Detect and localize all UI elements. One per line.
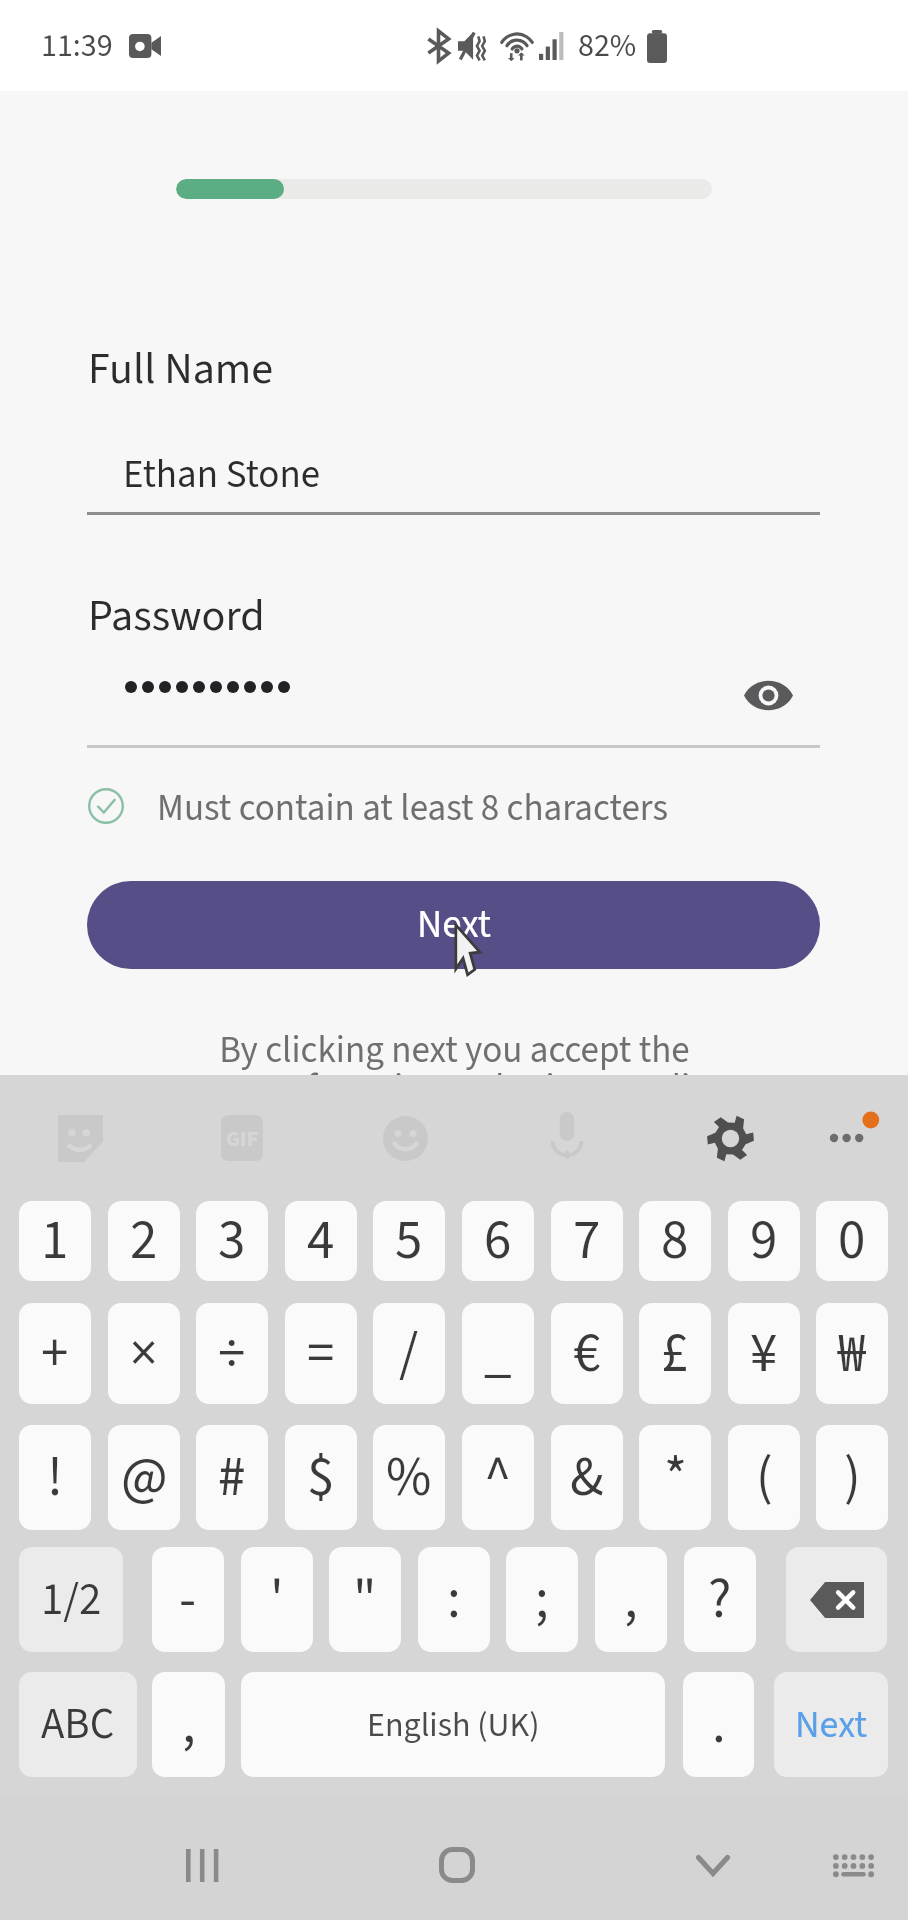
staticText: ₩ — [838, 1315, 866, 1393]
button[interactable]: Emoji — [373, 1106, 437, 1170]
staticText: , — [182, 1686, 196, 1764]
staticText: 6 — [484, 1202, 512, 1280]
staticText: ABC — [41, 1694, 115, 1755]
staticText: # — [218, 1439, 246, 1517]
button[interactable]: ÷ — [196, 1303, 268, 1404]
button[interactable]: $ — [285, 1425, 357, 1530]
button[interactable]: 5 — [373, 1201, 445, 1281]
button[interactable]: Home — [410, 1825, 504, 1905]
staticText: ? — [708, 1561, 732, 1639]
staticText: 3 — [218, 1202, 246, 1280]
staticText: " — [353, 1561, 377, 1639]
staticText: 2 — [130, 1202, 158, 1280]
staticText: 7 — [573, 1202, 601, 1280]
button[interactable]: @ — [108, 1425, 180, 1530]
staticText: * — [664, 1439, 687, 1517]
staticText: Password — [88, 585, 265, 648]
button[interactable]: Backspace — [786, 1547, 887, 1652]
staticText: 11:39 — [41, 23, 113, 69]
staticText: 4 — [307, 1202, 335, 1280]
button[interactable]: ¥ — [728, 1303, 800, 1404]
staticText: English (UK) — [367, 1701, 540, 1749]
staticText: ! — [47, 1439, 63, 1517]
button[interactable]: _ — [462, 1303, 534, 1404]
staticText: 82% — [578, 23, 637, 69]
button[interactable]: Recents — [155, 1825, 249, 1905]
button[interactable]: Change keyboard — [806, 1825, 900, 1905]
button[interactable]: 3 — [196, 1201, 268, 1281]
staticText: Full Name — [88, 338, 274, 401]
button[interactable]: ? — [684, 1547, 756, 1652]
button[interactable]: ^ — [462, 1425, 534, 1530]
button[interactable]: GIF — [210, 1106, 274, 1170]
button[interactable]: 9 — [728, 1201, 800, 1281]
staticText: 9 — [750, 1202, 778, 1280]
button[interactable]: Next — [87, 881, 820, 969]
button[interactable]: Voice input — [535, 1106, 599, 1170]
staticText: GIF — [226, 1123, 259, 1154]
button[interactable]: More options — [813, 1106, 877, 1170]
button[interactable]: , — [595, 1547, 667, 1652]
button[interactable]: # — [196, 1425, 268, 1530]
staticText: ¥ — [750, 1315, 778, 1393]
staticText: 1/2 — [41, 1568, 102, 1632]
button[interactable]: : — [418, 1547, 490, 1652]
button[interactable]: Show password — [728, 655, 808, 735]
staticText: + — [41, 1315, 69, 1393]
button[interactable]: " — [329, 1547, 401, 1652]
button[interactable]: 1/2 — [19, 1547, 123, 1652]
staticText: _ — [484, 1315, 512, 1393]
button[interactable]: 8 — [639, 1201, 711, 1281]
staticText: , — [624, 1561, 638, 1639]
staticText: Must contain at least 8 characters — [157, 782, 668, 835]
staticText: . — [712, 1686, 726, 1764]
button[interactable]: English (UK) — [241, 1672, 665, 1777]
staticText: Ethan Stone — [123, 447, 321, 503]
button[interactable]: 1 — [19, 1201, 91, 1281]
button[interactable]: * — [639, 1425, 711, 1530]
staticText: ; — [535, 1561, 549, 1639]
staticText: 0 — [838, 1202, 866, 1280]
button[interactable]: - — [152, 1547, 224, 1652]
button[interactable]: ! — [19, 1425, 91, 1530]
staticText: ) — [844, 1439, 861, 1517]
staticText: = — [307, 1315, 335, 1393]
button[interactable]: ₩ — [816, 1303, 888, 1404]
button[interactable]: ; — [506, 1547, 578, 1652]
button[interactable]: % — [373, 1425, 445, 1530]
button[interactable]: 6 — [462, 1201, 534, 1281]
button[interactable]: + — [19, 1303, 91, 1404]
staticText: Next — [417, 897, 491, 953]
staticText: € — [573, 1315, 601, 1393]
button[interactable]: = — [285, 1303, 357, 1404]
button[interactable]: £ — [639, 1303, 711, 1404]
button[interactable]: Hide keyboard — [666, 1825, 760, 1905]
staticText: ' — [270, 1561, 284, 1639]
staticText: Next — [795, 1698, 868, 1752]
staticText: By clicking next you accept the Terms of… — [184, 1024, 725, 1115]
button[interactable]: € — [551, 1303, 623, 1404]
button[interactable]: 7 — [551, 1201, 623, 1281]
button[interactable]: 2 — [108, 1201, 180, 1281]
staticText: × — [130, 1315, 158, 1393]
button[interactable]: . — [683, 1672, 754, 1777]
staticText: $ — [307, 1439, 335, 1517]
button[interactable]: / — [373, 1303, 445, 1404]
button[interactable]: Stickers — [48, 1106, 112, 1170]
button[interactable]: ( — [728, 1425, 800, 1530]
staticText: £ — [661, 1315, 689, 1393]
staticText: % — [386, 1439, 432, 1517]
button[interactable]: & — [551, 1425, 623, 1530]
button[interactable]: ' — [241, 1547, 313, 1652]
button[interactable]: ) — [816, 1425, 888, 1530]
button[interactable]: ABC — [19, 1672, 137, 1777]
staticText: 1 — [41, 1202, 69, 1280]
button[interactable]: × — [108, 1303, 180, 1404]
button[interactable]: 0 — [816, 1201, 888, 1281]
button[interactable]: Next — [774, 1672, 888, 1777]
staticText: 8 — [661, 1202, 689, 1280]
button[interactable]: 4 — [285, 1201, 357, 1281]
staticText: : — [447, 1561, 461, 1639]
button[interactable]: Keyboard settings — [698, 1106, 762, 1170]
button[interactable]: , — [152, 1672, 225, 1777]
